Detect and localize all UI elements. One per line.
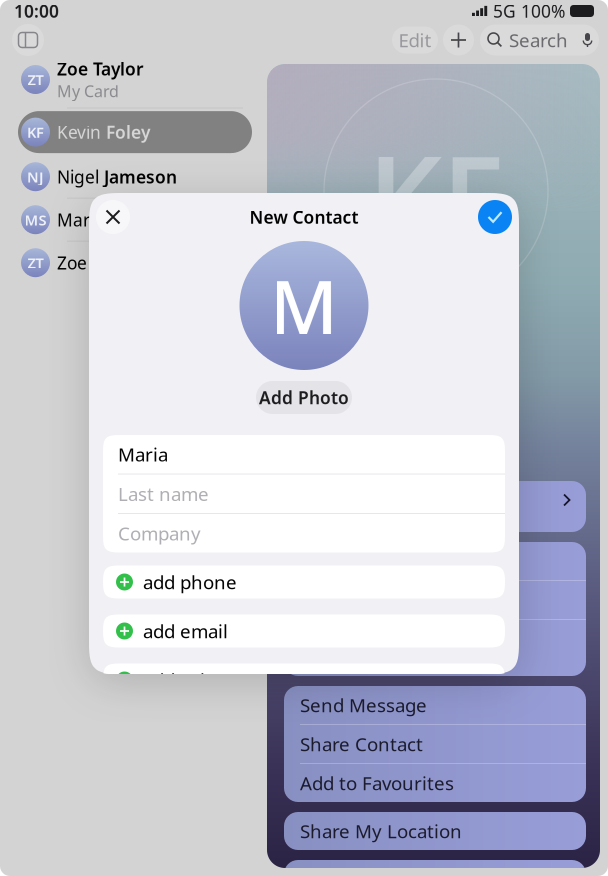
button[interactable]: Add to Favourites (284, 764, 586, 802)
staticText: Last name (118, 481, 209, 506)
staticText: 5G 100% (488, 0, 570, 22)
button[interactable]: Toggle Sidebar (12, 24, 44, 56)
staticText: Edit (398, 28, 431, 52)
staticText: NJ (27, 167, 44, 186)
button[interactable]: Share Contact (284, 725, 586, 763)
staticText: Share My Location (300, 819, 462, 843)
button[interactable]: KF (18, 111, 252, 153)
staticText: Zoe Taylor (57, 57, 144, 80)
staticText: Nigel Jameson (57, 165, 177, 188)
staticText: Send Message (300, 693, 427, 717)
staticText: Address (300, 627, 370, 651)
button[interactable]: Edit (392, 26, 438, 53)
staticText: Kevin Foley (57, 121, 150, 144)
staticText: Company (118, 521, 201, 546)
button[interactable]: ZT (18, 242, 252, 284)
staticText: add email (143, 619, 228, 643)
button[interactable]: Send Message (284, 686, 586, 724)
staticText: Add Photo (259, 386, 349, 409)
staticText: My Card (57, 80, 119, 102)
button[interactable]: Add Photo (256, 381, 352, 414)
button[interactable]: add url (103, 663, 505, 696)
button[interactable]: NJ (18, 156, 252, 198)
button[interactable]: add phone (103, 565, 505, 598)
staticText: Notes (300, 867, 352, 876)
staticText: Share Contact (300, 732, 423, 756)
button[interactable]: Close (96, 200, 130, 234)
button[interactable]: Birthday (284, 581, 586, 619)
staticText: Maria (118, 442, 168, 467)
button[interactable]: add email (103, 614, 505, 647)
staticText: add phone (143, 570, 237, 594)
staticText: Search (509, 28, 568, 52)
staticText: KF (27, 122, 44, 142)
button[interactable]: Notes (284, 860, 586, 876)
button[interactable]: Address (284, 620, 586, 658)
button[interactable]: Done (478, 200, 512, 234)
staticText: ZT (27, 70, 43, 89)
staticText: New Contact (249, 205, 358, 228)
staticText: 10:00 (14, 0, 59, 22)
staticText: add url (143, 668, 205, 692)
staticText: Email (300, 549, 347, 573)
button[interactable]: ZT (18, 51, 252, 107)
staticText: Birthday (300, 588, 375, 612)
button[interactable]: Search (480, 24, 599, 55)
button[interactable]: Share My Location (284, 812, 586, 850)
staticText: ZT (27, 253, 43, 272)
button[interactable]: Email (284, 542, 586, 580)
staticText: Zoe Thompson (57, 251, 183, 274)
staticText: Add to Favourites (300, 771, 454, 795)
staticText: MS (24, 210, 46, 229)
staticText: KF (368, 118, 504, 270)
staticText: Maria Stone (57, 208, 158, 231)
button[interactable]: Add Contact (443, 24, 474, 55)
staticText: M (269, 256, 338, 355)
button[interactable]: MS (18, 199, 252, 241)
button[interactable]: Phone (284, 481, 586, 519)
